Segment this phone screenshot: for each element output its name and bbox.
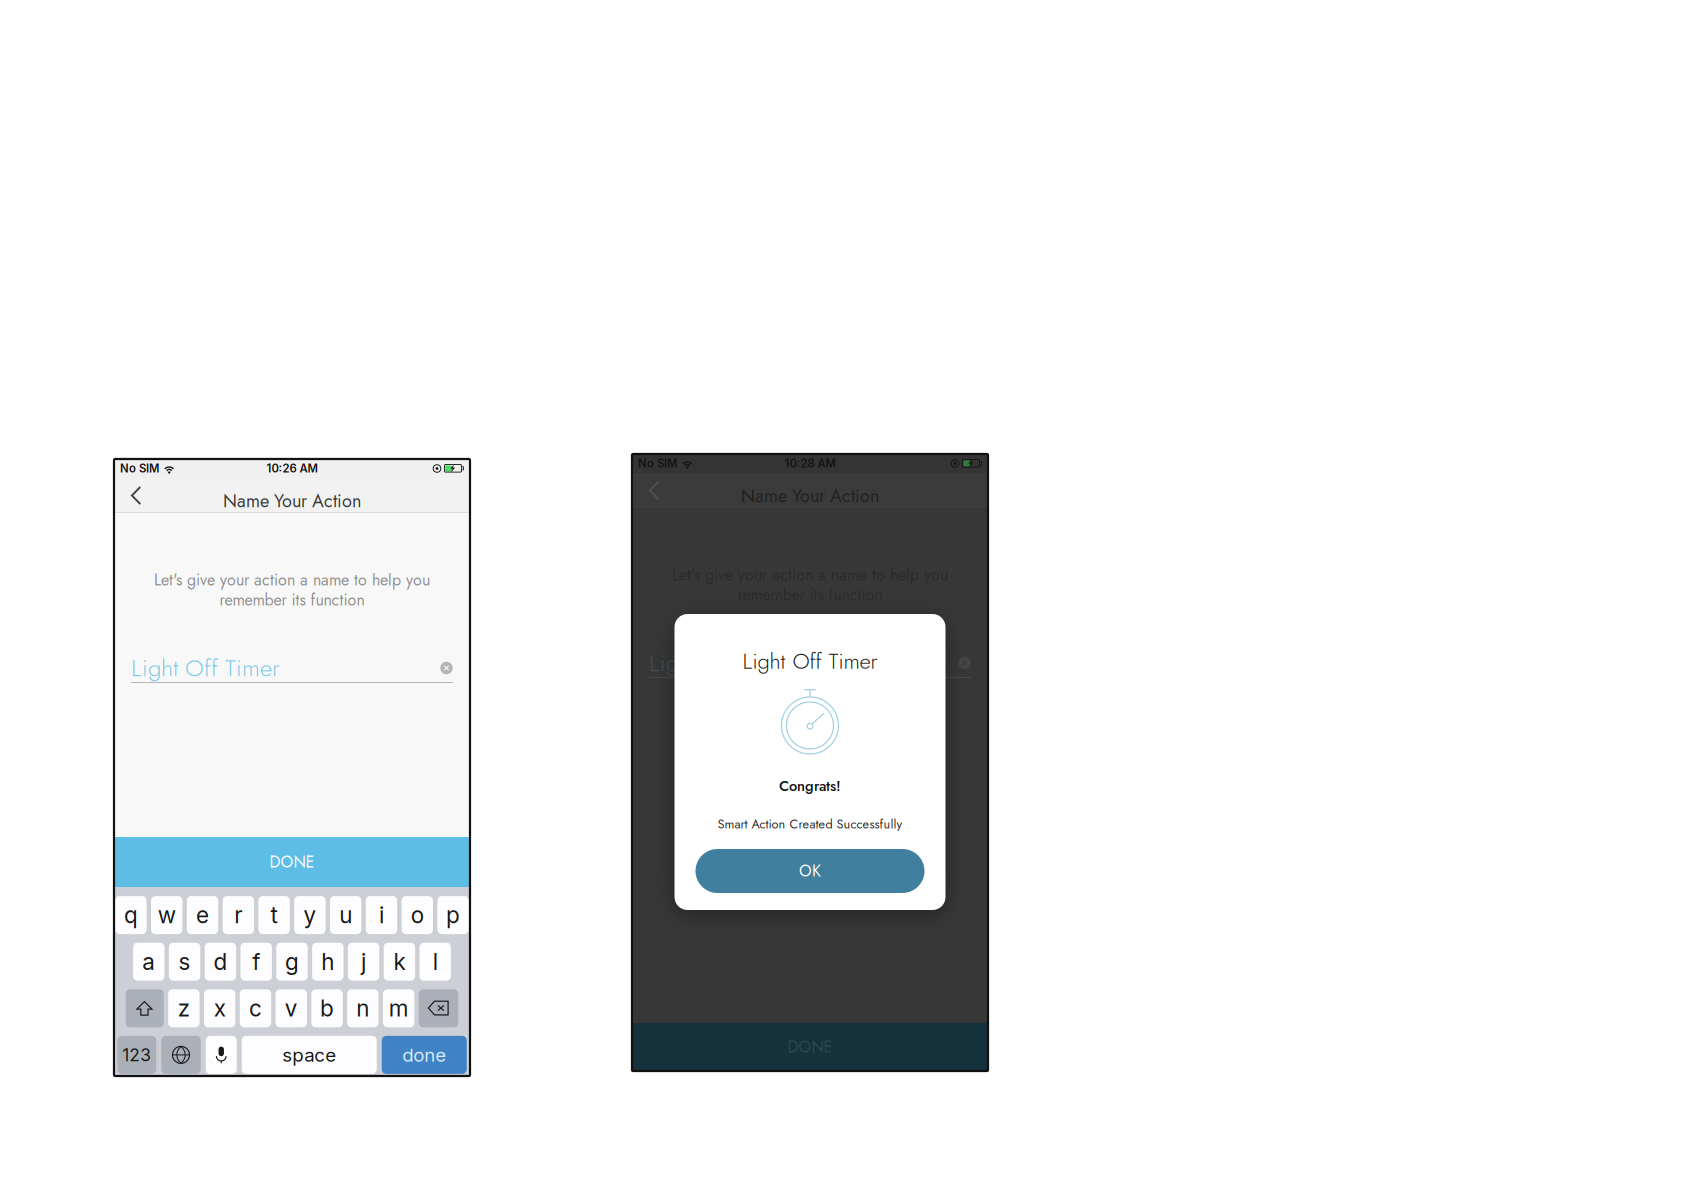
staticText: y [303, 901, 316, 929]
staticText: q [124, 901, 138, 929]
staticText: x [214, 995, 226, 1022]
staticText: Light Off Timer [649, 646, 798, 680]
button[interactable]: b [311, 989, 343, 1027]
staticText: v [285, 995, 298, 1022]
button[interactable]: p [437, 896, 469, 934]
button[interactable]: x [204, 989, 235, 1027]
staticText: DONE [787, 1035, 832, 1058]
button[interactable]: w [151, 896, 182, 934]
staticText: a [142, 948, 155, 975]
button[interactable]: q [115, 896, 147, 934]
button[interactable]: e [187, 896, 218, 934]
staticText: space [282, 1044, 336, 1066]
button[interactable]: 123 [117, 1036, 156, 1074]
staticText: Smart Action Created Successfully [717, 815, 902, 833]
button[interactable]: m [383, 989, 414, 1027]
button[interactable]: d [205, 943, 236, 981]
staticText: done [402, 1044, 446, 1066]
button[interactable]: y [294, 896, 326, 934]
button[interactable]: Delete [419, 989, 458, 1027]
staticText: s [179, 948, 191, 975]
button[interactable]: Dictate [206, 1036, 237, 1074]
button[interactable]: OK [695, 849, 924, 893]
button[interactable]: c [240, 989, 271, 1027]
staticText: Name Your Action [741, 483, 879, 509]
button[interactable]: g [276, 943, 308, 981]
button[interactable]: u [330, 896, 361, 934]
staticText: DONE [269, 850, 314, 873]
button[interactable]: t [258, 896, 290, 934]
button[interactable]: h [312, 943, 343, 981]
staticText: remember its function [219, 588, 364, 611]
staticText: h [321, 948, 334, 975]
staticText: 123 [122, 1044, 151, 1065]
staticText: i [379, 901, 384, 929]
staticText: r [234, 901, 242, 929]
staticText: OK [799, 859, 821, 882]
staticText: remember its function [737, 583, 882, 606]
button[interactable]: i [366, 896, 397, 934]
button[interactable]: Back [632, 473, 676, 508]
button[interactable]: f [240, 943, 272, 981]
button[interactable]: s [169, 943, 200, 981]
button[interactable]: r [223, 896, 254, 934]
staticText: k [393, 948, 405, 975]
staticText: Let's give your action a name to help yo… [154, 568, 430, 591]
button[interactable]: k [384, 943, 415, 981]
button[interactable]: o [402, 896, 433, 934]
staticText: Light Off Timer [742, 645, 877, 677]
staticText: w [158, 901, 176, 929]
staticText: u [339, 901, 352, 929]
staticText: Let's give your action a name to help yo… [672, 563, 948, 586]
button[interactable]: v [275, 989, 307, 1027]
button[interactable]: z [168, 989, 200, 1027]
staticText: m [389, 995, 409, 1022]
button[interactable]: Back [114, 478, 158, 513]
staticText: g [285, 948, 299, 975]
button[interactable]: done [382, 1036, 467, 1074]
staticText: f [252, 948, 260, 975]
button[interactable]: l [419, 943, 451, 981]
staticText: e [196, 901, 209, 929]
button[interactable]: Next keyboard [161, 1036, 201, 1074]
button[interactable]: space [242, 1036, 377, 1074]
button[interactable]: n [347, 989, 378, 1027]
staticText: z [178, 995, 190, 1022]
button[interactable]: DONE [114, 837, 470, 887]
staticText: No SIM [638, 457, 677, 470]
staticText: l [433, 948, 438, 975]
staticText: No SIM [120, 462, 159, 475]
button[interactable]: a [133, 943, 164, 981]
staticText: n [356, 995, 369, 1022]
staticText: Congrats! [779, 775, 841, 797]
staticText: t [271, 901, 278, 929]
staticText: 10:28 AM [784, 457, 835, 470]
staticText: p [446, 901, 460, 929]
staticText: c [249, 995, 262, 1022]
staticText: d [213, 948, 227, 975]
staticText: b [320, 995, 334, 1022]
staticText: o [411, 901, 424, 929]
staticText: 10:26 AM [266, 462, 317, 475]
button[interactable]: Shift [126, 989, 164, 1027]
button[interactable]: j [348, 943, 379, 981]
staticText: Light Off Timer [131, 651, 280, 685]
staticText: j [361, 948, 366, 975]
staticText: Name Your Action [223, 488, 361, 514]
